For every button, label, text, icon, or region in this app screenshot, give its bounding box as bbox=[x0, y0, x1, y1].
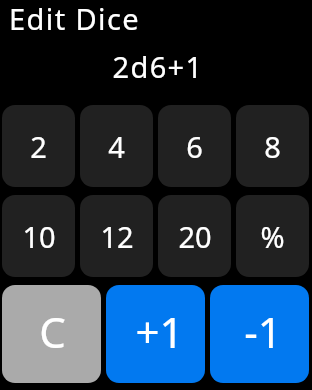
staticText: 8 bbox=[264, 127, 281, 166]
staticText: C bbox=[39, 303, 66, 360]
staticText: 2 bbox=[30, 127, 47, 166]
staticText: 6 bbox=[186, 127, 203, 166]
staticText: 2d6+1 bbox=[2, 47, 312, 86]
button[interactable]: % bbox=[236, 195, 309, 277]
staticText: 20 bbox=[178, 217, 212, 256]
staticText: % bbox=[260, 217, 285, 256]
staticText: Edit Dice bbox=[9, 0, 140, 35]
button[interactable]: 8 bbox=[236, 105, 309, 187]
staticText: -1 bbox=[244, 303, 282, 360]
button[interactable]: 10 bbox=[2, 195, 75, 277]
button[interactable]: 4 bbox=[80, 105, 153, 187]
button[interactable]: Subtract one bbox=[210, 285, 309, 383]
staticText: 4 bbox=[108, 127, 125, 166]
button[interactable]: 2 bbox=[2, 105, 75, 187]
button[interactable]: 20 bbox=[158, 195, 231, 277]
staticText: +1 bbox=[135, 303, 184, 360]
button[interactable]: 12 bbox=[80, 195, 153, 277]
button[interactable]: Clear bbox=[2, 285, 101, 383]
button[interactable]: Add one bbox=[106, 285, 205, 383]
staticText: 10 bbox=[22, 217, 56, 256]
staticText: 12 bbox=[100, 217, 134, 256]
button[interactable]: 6 bbox=[158, 105, 231, 187]
